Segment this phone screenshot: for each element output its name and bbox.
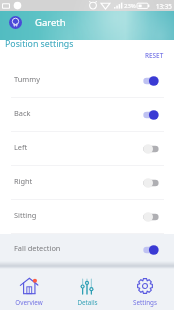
staticText: Tummy <box>14 74 40 84</box>
staticText: Left <box>14 142 28 152</box>
staticText: RESET <box>145 51 164 60</box>
staticText: Back <box>14 108 31 118</box>
button[interactable]: Turn off <box>139 108 159 122</box>
button[interactable]: Turn on <box>139 142 159 156</box>
button[interactable]: Turn off <box>139 74 159 88</box>
button[interactable]: RESET <box>136 48 174 64</box>
button[interactable]: Turn on <box>139 210 159 224</box>
button[interactable]: Left <box>0 132 174 165</box>
button[interactable]: Right <box>0 166 174 199</box>
staticText: Position settings <box>5 38 74 50</box>
button[interactable]: Fall detection <box>0 234 174 266</box>
button[interactable]: Sitting <box>0 200 174 233</box>
button[interactable]: Overview <box>0 266 58 310</box>
button[interactable]: Back <box>0 98 174 131</box>
staticText: Details <box>77 298 98 307</box>
button[interactable]: Settings <box>116 266 174 310</box>
staticText: Sitting <box>14 210 37 220</box>
staticText: Right <box>14 176 33 186</box>
staticText: Overview <box>15 298 43 307</box>
staticText: Settings <box>133 298 157 307</box>
staticText: Gareth <box>35 16 66 29</box>
button[interactable]: Details <box>58 266 116 310</box>
staticText: 23% <box>124 2 136 10</box>
staticText: Fall detection <box>14 243 61 253</box>
button[interactable]: Tummy <box>0 64 174 97</box>
button[interactable]: Turn off <box>139 243 159 257</box>
staticText: 13:35 <box>156 2 172 10</box>
button[interactable]: Profile <box>9 16 22 29</box>
button[interactable]: Turn on <box>139 176 159 190</box>
